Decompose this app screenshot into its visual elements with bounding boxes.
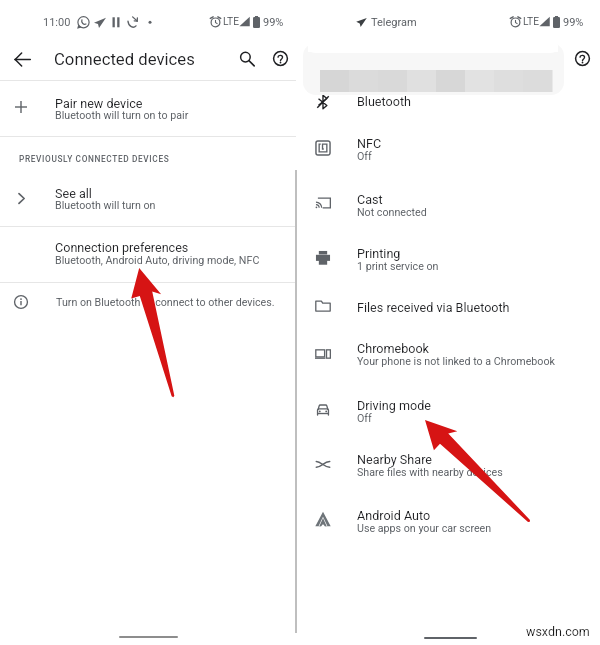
staticText: Turn on Bluetooth to connect to other de… (56, 296, 275, 309)
button[interactable]: Help (265, 43, 296, 74)
button[interactable] (300, 284, 600, 328)
button[interactable]: Help (567, 43, 598, 74)
staticText: 99% (263, 16, 284, 29)
staticText: Bluetooth will turn on to pair (55, 109, 189, 122)
staticText: 1 print service on (357, 260, 439, 273)
button[interactable] (300, 80, 600, 124)
staticText: Cast (357, 192, 383, 207)
button[interactable] (300, 120, 600, 176)
staticText: Chromebook (357, 341, 430, 356)
staticText: Bluetooth, Android Auto, driving mode, N… (55, 254, 260, 267)
staticText: 11:00 (43, 16, 71, 29)
staticText: Android Auto (357, 508, 431, 523)
button[interactable] (300, 491, 600, 547)
staticText: See all (55, 186, 92, 201)
staticText: wsxdn.com (526, 624, 590, 639)
button[interactable] (300, 436, 600, 492)
button[interactable] (300, 175, 600, 231)
button[interactable]: Back (6, 43, 38, 75)
button[interactable] (300, 326, 600, 382)
staticText: NFC (357, 136, 382, 151)
staticText: LTE (523, 16, 539, 28)
button[interactable]: Search (231, 43, 262, 74)
staticText: Bluetooth will turn on (55, 199, 156, 212)
button[interactable] (0, 283, 296, 323)
staticText: Files received via Bluetooth (357, 300, 510, 315)
staticText: Connection preferences (55, 240, 189, 255)
staticText: Off (357, 412, 372, 425)
staticText: Nearby Share (357, 452, 432, 467)
staticText: Share files with nearby devices (357, 466, 503, 479)
staticText: Not connected (357, 206, 427, 219)
button[interactable] (300, 230, 600, 286)
staticText: Driving mode (357, 398, 431, 413)
staticText: Connected devices (54, 50, 195, 70)
staticText: Off (357, 150, 372, 163)
button[interactable] (0, 81, 296, 136)
staticText: Bluetooth (357, 94, 411, 109)
button[interactable] (0, 171, 296, 226)
button[interactable] (300, 382, 600, 438)
staticText: PREVIOUSLY CONNECTED DEVICES (19, 154, 170, 164)
button[interactable] (0, 227, 296, 282)
staticText: LTE (223, 16, 239, 28)
staticText: 99% (563, 16, 584, 29)
staticText: Your phone is not linked to a Chromebook (357, 355, 555, 368)
staticText: Pair new device (55, 96, 143, 111)
staticText: Use apps on your car screen (357, 522, 492, 535)
staticText: Printing (357, 246, 401, 261)
staticText: Telegram (371, 16, 417, 29)
